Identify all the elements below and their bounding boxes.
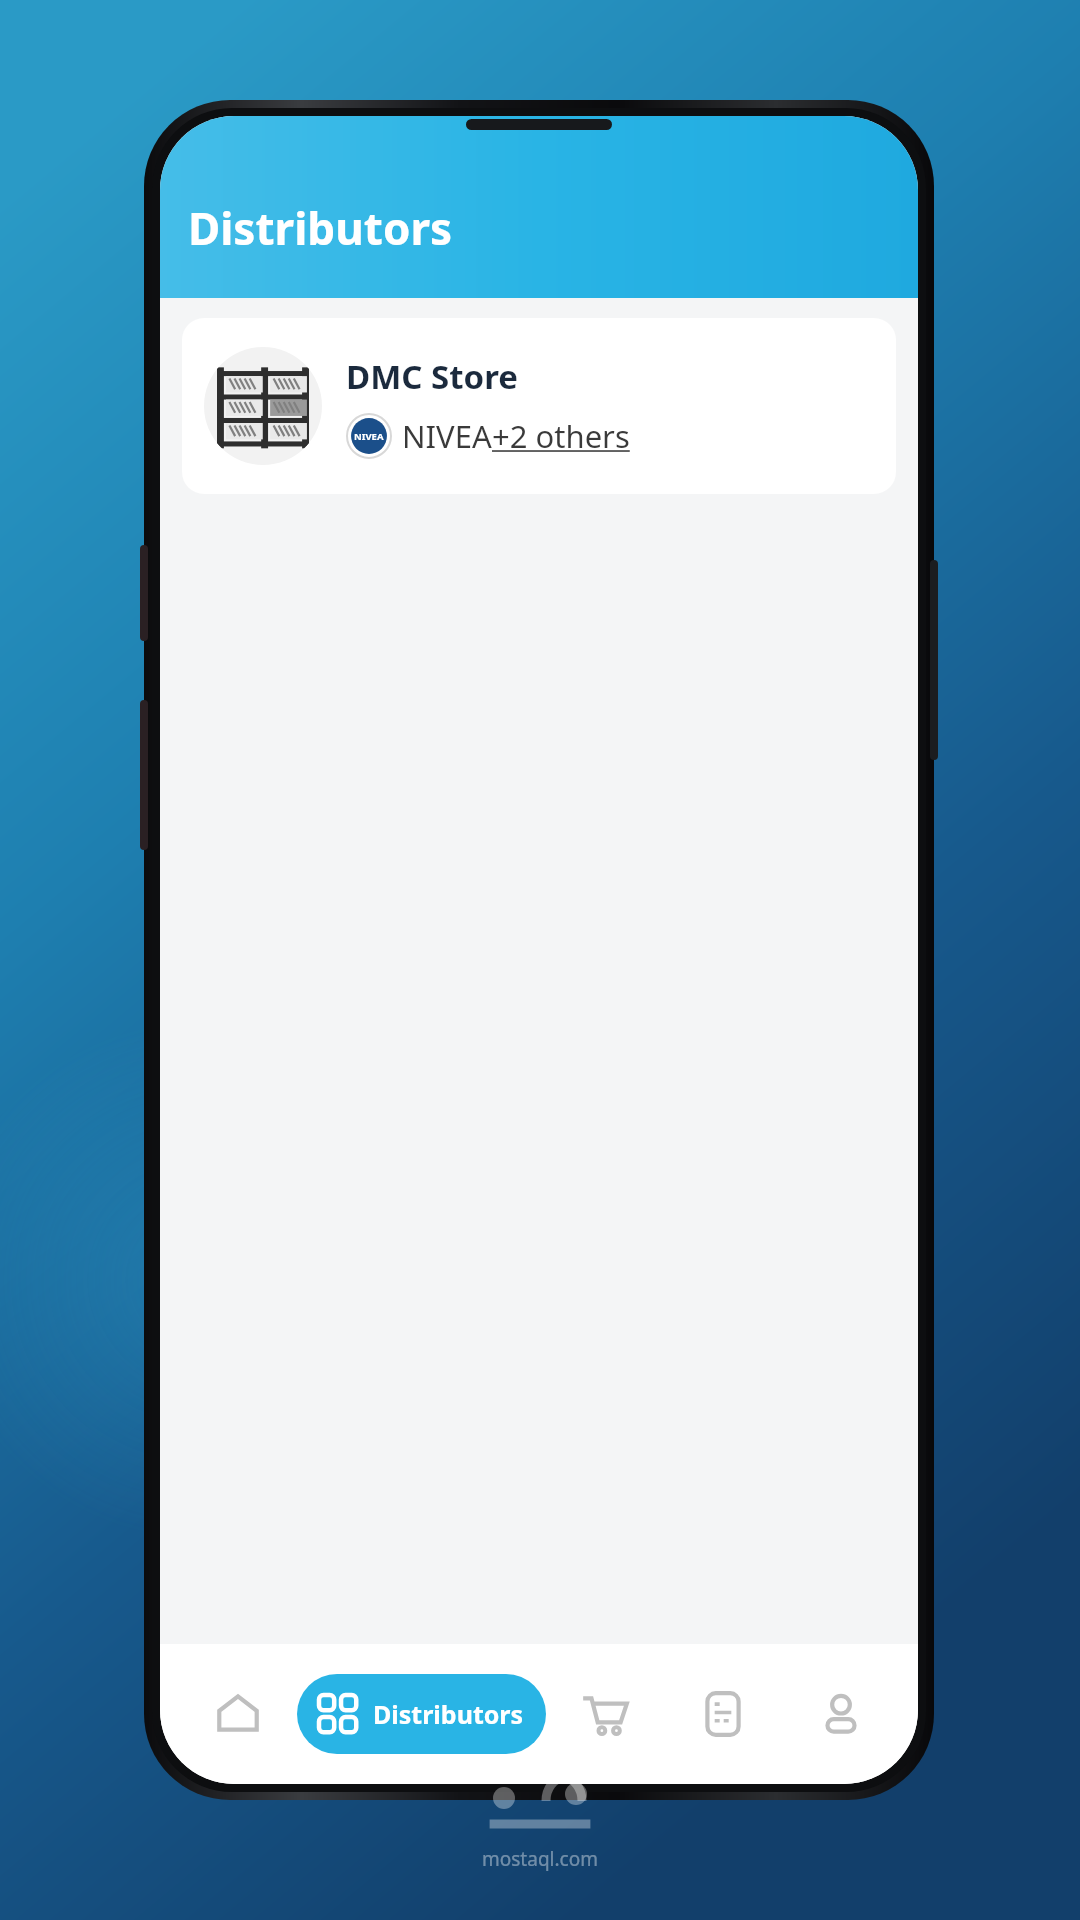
staticText: mostaql.com: [482, 1846, 598, 1872]
button[interactable]: Home: [178, 1644, 297, 1784]
button[interactable]: Profile: [782, 1644, 900, 1784]
button[interactable]: Distributors: [297, 1674, 546, 1754]
staticText: Distributors: [188, 198, 453, 258]
staticText: Distributors: [373, 1697, 524, 1731]
staticText: +2 others: [492, 415, 630, 457]
button[interactable]: Cart: [546, 1644, 664, 1784]
button[interactable]: DMC Store: [182, 318, 896, 494]
staticText: NIVEA: [354, 430, 384, 443]
button[interactable]: Orders: [664, 1644, 782, 1784]
staticText: DMC Store: [346, 354, 518, 399]
staticText: NIVEA: [402, 415, 492, 457]
